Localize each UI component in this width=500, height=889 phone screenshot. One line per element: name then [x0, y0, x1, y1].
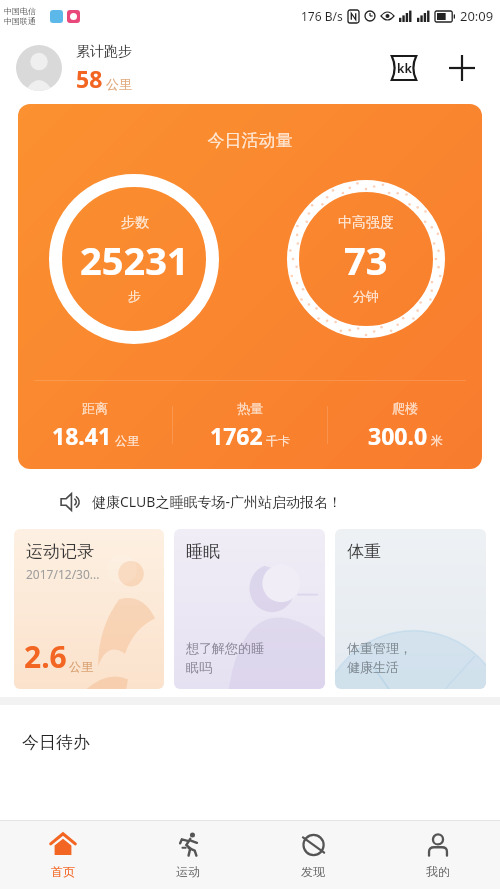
staticText: 首页	[51, 864, 75, 879]
staticText: 中国联通	[4, 16, 36, 26]
staticText: 176 B/s	[301, 8, 343, 24]
staticText: 2017/12/30...	[26, 566, 100, 582]
staticText: 运动记录	[26, 541, 94, 562]
staticText: 我的	[426, 864, 450, 879]
button[interactable]: 睡眠	[174, 529, 325, 689]
button[interactable]: 运动	[125, 821, 250, 889]
button[interactable]: Profile	[16, 45, 62, 91]
staticText: 73	[344, 234, 388, 286]
staticText: 体重	[347, 541, 381, 562]
staticText: 18.41	[52, 420, 112, 451]
staticText: 眠吗	[186, 659, 212, 675]
staticText: 分钟	[353, 288, 379, 304]
button[interactable]: Coupons	[382, 46, 426, 90]
button[interactable]: 热量	[173, 400, 327, 451]
button[interactable]: 爬楼	[328, 400, 482, 451]
staticText: 今日活动量	[18, 130, 482, 151]
button[interactable]: 我的	[375, 821, 500, 889]
staticText: 千卡	[266, 433, 290, 448]
button[interactable]: 今日活动量	[18, 104, 482, 469]
staticText: 58	[76, 63, 103, 94]
staticText: 公里	[115, 433, 139, 448]
staticText: 运动	[176, 864, 200, 879]
staticText: 健康生活	[347, 659, 399, 675]
staticText: 20:09	[460, 7, 494, 25]
staticText: 中国电信	[4, 6, 36, 16]
staticText: 爬楼	[392, 400, 418, 416]
button[interactable]: 首页	[0, 821, 125, 889]
staticText: 想了解您的睡	[186, 640, 264, 656]
staticText: 中高强度	[338, 214, 394, 232]
staticText: 健康CLUB之睡眠专场-广州站启动报名！	[92, 492, 342, 511]
staticText: 今日待办	[22, 732, 90, 753]
staticText: 步数	[121, 214, 149, 232]
staticText: 1762	[210, 420, 263, 451]
staticText: 热量	[237, 400, 263, 416]
staticText: 公里	[106, 76, 132, 92]
staticText: 发现	[301, 864, 325, 879]
staticText: 距离	[82, 400, 108, 416]
staticText: 2.6	[24, 636, 67, 677]
button[interactable]: 发现	[250, 821, 375, 889]
staticText: 累计跑步	[76, 43, 132, 61]
staticText: 公里	[69, 659, 93, 674]
staticText: 体重管理，	[347, 640, 412, 656]
button[interactable]: 体重	[335, 529, 486, 689]
button[interactable]: 距离	[18, 400, 172, 451]
button[interactable]: Add	[440, 46, 484, 90]
staticText: kk	[397, 60, 412, 76]
staticText: 步	[128, 288, 141, 304]
button[interactable]: 累计跑步	[76, 43, 132, 94]
button[interactable]: 健康CLUB之睡眠专场-广州站启动报名！	[0, 474, 500, 529]
staticText: 300.0	[368, 420, 428, 451]
button[interactable]: 运动记录	[14, 529, 164, 689]
staticText: 睡眠	[186, 541, 220, 562]
staticText: 25231	[80, 234, 189, 286]
staticText: 米	[431, 433, 443, 448]
